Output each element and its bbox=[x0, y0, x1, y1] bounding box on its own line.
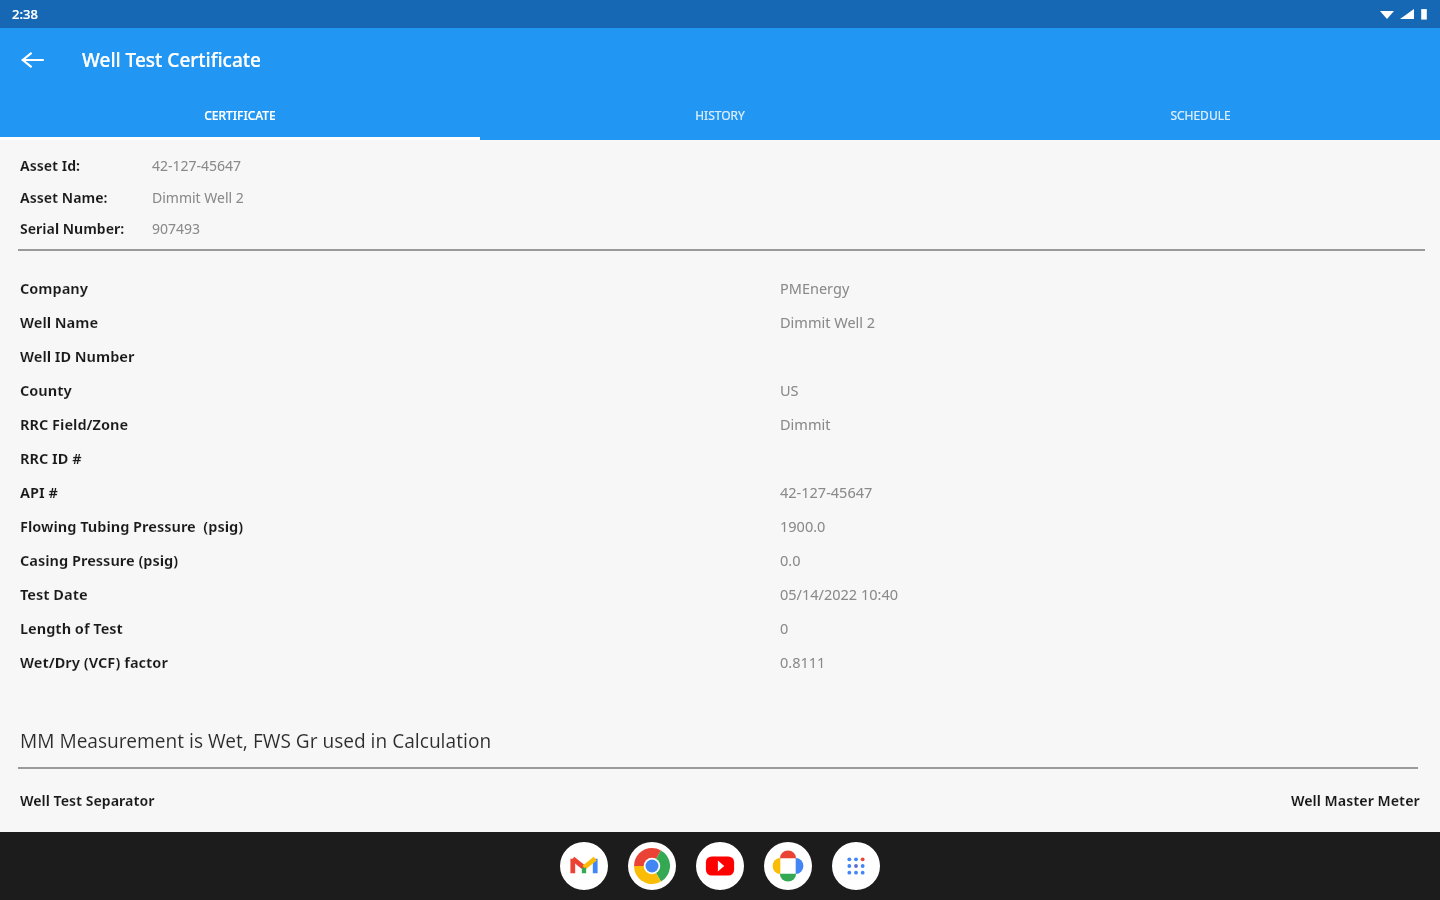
staticText: SCHEDULE bbox=[1170, 107, 1231, 123]
staticText: API # bbox=[20, 482, 58, 502]
button[interactable]: API # bbox=[0, 482, 1440, 502]
staticText: Dimmit Well 2 bbox=[152, 188, 244, 207]
button[interactable]: CERTIFICATE bbox=[0, 92, 480, 137]
button[interactable]: RRC Field/Zone bbox=[0, 414, 1440, 434]
staticText: Dimmit Well 2 bbox=[780, 312, 876, 332]
staticText: Wet/Dry (VCF) factor bbox=[20, 652, 168, 672]
button[interactable]: Company bbox=[0, 278, 1440, 298]
staticText: Asset Name: bbox=[20, 188, 108, 207]
staticText: Casing Pressure (psig) bbox=[20, 550, 179, 570]
staticText: MM Measurement is Wet, FWS Gr used in Ca… bbox=[20, 728, 492, 754]
staticText: Dimmit bbox=[780, 414, 831, 434]
staticText: 0 bbox=[780, 618, 789, 638]
staticText: 42-127-45647 bbox=[780, 482, 873, 502]
button[interactable]: HISTORY bbox=[480, 92, 960, 137]
staticText: 42-127-45647 bbox=[152, 156, 242, 175]
staticText: Company bbox=[20, 278, 89, 298]
button[interactable]: Casing Pressure (psig) bbox=[0, 550, 1440, 570]
button[interactable]: RRC ID # bbox=[0, 448, 1440, 468]
staticText: CERTIFICATE bbox=[204, 107, 276, 123]
staticText: Well Master Meter bbox=[1291, 791, 1420, 810]
button[interactable]: YouTube bbox=[696, 842, 744, 890]
staticText: Well ID Number bbox=[20, 346, 135, 366]
staticText: 0.0 bbox=[780, 550, 801, 570]
button[interactable]: Test Date bbox=[0, 584, 1440, 604]
staticText: PMEnergy bbox=[780, 278, 850, 298]
button[interactable]: Wet/Dry (VCF) factor bbox=[0, 652, 1440, 672]
staticText: RRC ID # bbox=[20, 448, 82, 468]
staticText: County bbox=[20, 380, 72, 400]
staticText: Length of Test bbox=[20, 618, 123, 638]
button[interactable]: Photos bbox=[764, 842, 812, 890]
staticText: Test Date bbox=[20, 584, 88, 604]
staticText: Flowing Tubing Pressure (psig) bbox=[20, 516, 244, 536]
staticText: Asset Id: bbox=[20, 156, 81, 175]
button[interactable]: SCHEDULE bbox=[960, 92, 1440, 137]
staticText: 05/14/2022 10:40 bbox=[780, 584, 898, 604]
button[interactable]: Flowing Tubing Pressure (psig) bbox=[0, 516, 1440, 536]
button[interactable]: Length of Test bbox=[0, 618, 1440, 638]
staticText: Well Name bbox=[20, 312, 99, 332]
button[interactable]: Well ID Number bbox=[0, 346, 1440, 366]
staticText: HISTORY bbox=[695, 107, 745, 123]
staticText: RRC Field/Zone bbox=[20, 414, 129, 434]
button[interactable]: Gmail bbox=[560, 842, 608, 890]
button[interactable]: County bbox=[0, 380, 1440, 400]
staticText: Serial Number: bbox=[20, 219, 125, 238]
staticText: 1900.0 bbox=[780, 516, 826, 536]
button[interactable]: All apps bbox=[832, 842, 880, 890]
button[interactable]: Chrome bbox=[628, 842, 676, 890]
staticText: US bbox=[780, 380, 799, 400]
staticText: 0.8111 bbox=[780, 652, 826, 672]
button[interactable]: Back bbox=[12, 40, 52, 80]
staticText: Well Test Separator bbox=[20, 791, 155, 810]
staticText: 2:38 bbox=[12, 5, 38, 23]
button[interactable]: Well Name bbox=[0, 312, 1440, 332]
staticText: Well Test Certificate bbox=[82, 47, 261, 73]
staticText: 907493 bbox=[152, 219, 201, 238]
